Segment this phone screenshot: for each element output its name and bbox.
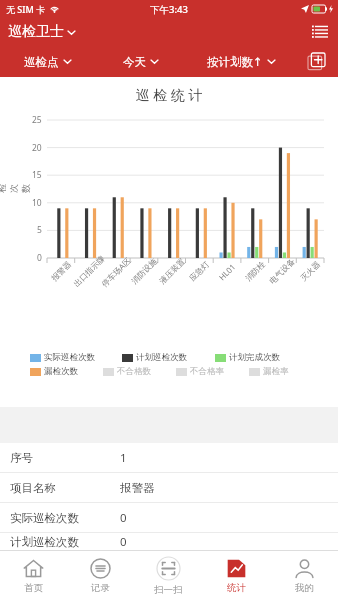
staticText: 我的	[295, 582, 314, 594]
staticText: 巡检卫士	[8, 23, 64, 41]
staticText: 今天	[123, 55, 146, 69]
staticText: 巡 检 统 计	[0, 85, 338, 104]
button[interactable]: 漏检次数	[30, 366, 103, 377]
button[interactable]: 统计	[202, 551, 270, 600]
button[interactable]: 记录	[67, 551, 134, 600]
button[interactable]: 实际巡检次数	[30, 352, 122, 363]
staticText: HL01	[216, 260, 238, 282]
staticText: 电气设备	[267, 256, 297, 286]
staticText: 无 SIM 卡	[6, 3, 46, 15]
staticText: 报警器	[49, 259, 73, 283]
staticText: 出口指示牌	[71, 253, 107, 289]
staticText: 20	[32, 142, 42, 154]
staticText: 项目名称	[10, 481, 120, 495]
staticText: 报警器	[120, 481, 155, 495]
button[interactable]: 不合格数	[103, 366, 176, 377]
button[interactable]: 扫一扫	[134, 551, 202, 600]
button[interactable]: 巡检卫士	[0, 19, 83, 45]
staticText: 统计	[227, 582, 246, 594]
button[interactable]: 按计划数↑	[187, 46, 294, 77]
staticText: 不合格数	[117, 366, 151, 377]
staticText: 10	[32, 197, 42, 209]
staticText: 液压装置	[157, 256, 187, 286]
staticText: 0	[37, 252, 42, 264]
staticText: 扫一扫	[154, 584, 183, 596]
staticText: 灭火器	[298, 259, 322, 283]
button[interactable]: 计划巡检次数	[0, 533, 338, 550]
staticText: 序号	[10, 451, 120, 465]
staticText: 不合格率	[190, 366, 224, 377]
staticText: 按计划数↑	[207, 55, 263, 69]
staticText: 计划巡检次数	[136, 352, 187, 363]
staticText: 15	[32, 169, 42, 181]
button[interactable]: 项目名称	[0, 473, 338, 503]
staticText: 实际巡检次数	[44, 352, 95, 363]
button[interactable]: 序号	[0, 443, 338, 473]
staticText: 5	[37, 224, 42, 236]
staticText: 下午3:43	[150, 3, 188, 16]
button[interactable]: 今天	[94, 46, 187, 77]
staticText: 漏检次数	[44, 366, 78, 377]
staticText: 巡检次数	[0, 177, 32, 193]
button[interactable]: 实际巡检次数	[0, 503, 338, 533]
staticText: 记录	[91, 582, 110, 594]
staticText: 计划巡检次数	[10, 535, 120, 549]
button[interactable]: 菜单	[308, 21, 332, 43]
button[interactable]: 计划完成次数	[215, 352, 308, 363]
button[interactable]: 新增	[294, 46, 338, 77]
button[interactable]: 我的	[270, 551, 338, 600]
staticText: 实际巡检次数	[10, 511, 120, 525]
button[interactable]: 首页	[0, 551, 67, 600]
staticText: 消防设施	[129, 256, 159, 286]
staticText: 首页	[24, 582, 43, 594]
button[interactable]: 巡检点	[0, 46, 94, 77]
staticText: 应急灯	[187, 259, 211, 283]
staticText: 0	[120, 510, 127, 526]
button[interactable]: 不合格率	[176, 366, 249, 377]
staticText: 巡检点	[24, 55, 59, 69]
staticText: 停车场A区	[99, 254, 133, 289]
staticText: 1	[120, 450, 127, 466]
staticText: 漏检率	[263, 366, 289, 377]
staticText: 0	[120, 534, 127, 550]
staticText: 计划完成次数	[229, 352, 280, 363]
staticText: 消防栓	[243, 259, 267, 283]
button[interactable]: 计划巡检次数	[122, 352, 215, 363]
button[interactable]: 漏检率	[249, 366, 308, 377]
staticText: 25	[32, 114, 42, 126]
